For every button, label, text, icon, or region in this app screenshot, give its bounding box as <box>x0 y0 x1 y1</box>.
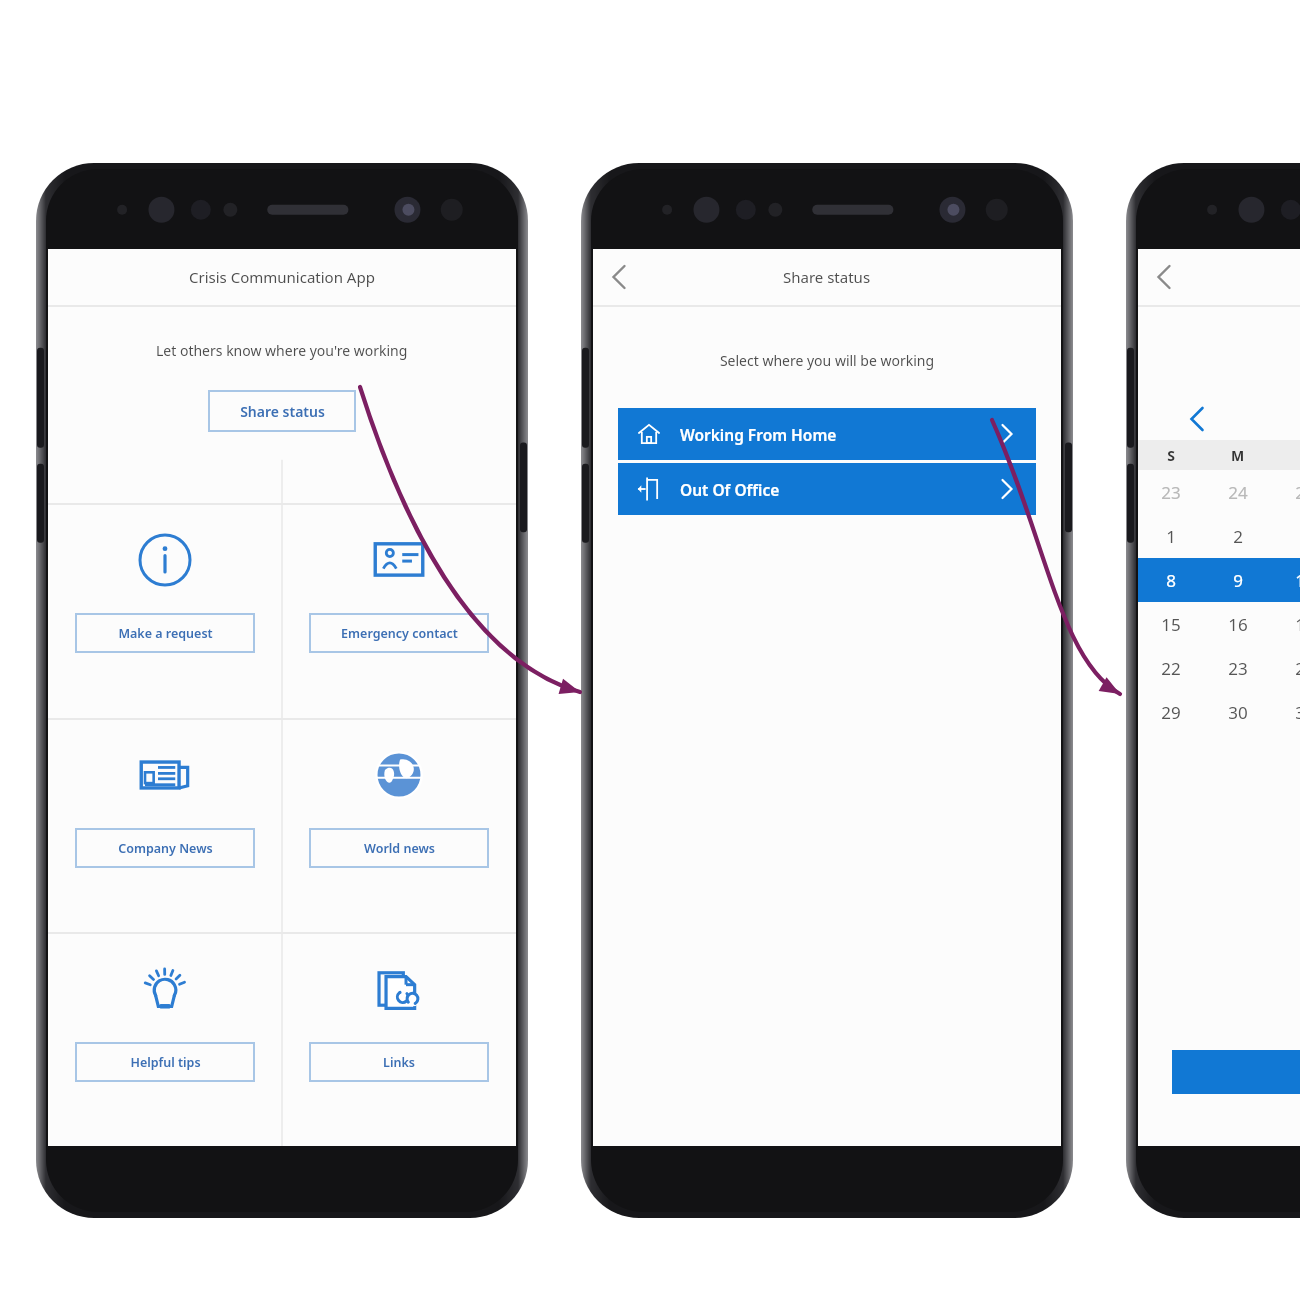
staticText: 10 <box>1295 569 1300 592</box>
button[interactable]: Emergency contact <box>309 613 489 653</box>
button[interactable]: Make a request <box>75 613 255 653</box>
staticText: M <box>1204 446 1271 465</box>
staticText: Working From Home <box>680 424 837 445</box>
staticText: 24 <box>1295 657 1300 680</box>
button[interactable]: Make a request <box>48 505 282 718</box>
button[interactable]: Share status <box>208 390 356 432</box>
button[interactable]: 31 <box>1271 690 1300 734</box>
staticText: 23 <box>1228 657 1248 680</box>
button[interactable]: World news <box>309 828 489 868</box>
staticText: Helpful tips <box>130 1054 201 1071</box>
staticText: Links <box>383 1054 415 1071</box>
button[interactable]: Out Of Office <box>618 463 1036 515</box>
button[interactable]: 8 <box>1138 558 1204 602</box>
staticText: 30 <box>1228 701 1248 724</box>
button[interactable]: 16 <box>1204 602 1271 646</box>
button[interactable]: Company News <box>48 720 282 932</box>
button[interactable]: 30 <box>1204 690 1271 734</box>
button[interactable]: 2 <box>1204 514 1271 558</box>
button[interactable]: 9 <box>1204 558 1271 602</box>
button[interactable]: Back <box>593 251 645 303</box>
staticText: 8 <box>1166 569 1176 592</box>
button[interactable]: 29 <box>1138 690 1204 734</box>
staticText: Select where you will be working <box>593 351 1061 370</box>
button[interactable]: World news <box>282 720 516 932</box>
button[interactable]: 22 <box>1138 646 1204 690</box>
staticText: Company News <box>118 840 213 857</box>
button[interactable]: 23 <box>1138 470 1204 514</box>
staticText: 22 <box>1161 657 1181 680</box>
staticText: 16 <box>1228 613 1248 636</box>
staticText: Let others know where you're working <box>156 341 408 360</box>
button[interactable]: 24 <box>1204 470 1271 514</box>
staticText: Out Of Office <box>680 479 780 500</box>
button[interactable]: Links <box>309 1042 489 1082</box>
button[interactable]: 17 <box>1271 602 1300 646</box>
staticText: 29 <box>1161 701 1181 724</box>
staticText: Make a request <box>118 625 213 642</box>
staticText: Share status <box>240 402 325 421</box>
staticText: 2 <box>1233 525 1243 548</box>
staticText: 15 <box>1161 613 1181 636</box>
button[interactable]: Links <box>282 934 516 1146</box>
staticText: 17 <box>1295 613 1300 636</box>
staticText: 25 <box>1295 481 1300 504</box>
button[interactable]: Back <box>1138 251 1190 303</box>
button[interactable]: Emergency contact <box>282 505 516 718</box>
staticText: 23 <box>1161 481 1181 504</box>
button[interactable]: 24 <box>1271 646 1300 690</box>
button[interactable]: Company News <box>75 828 255 868</box>
button[interactable]: 25 <box>1271 470 1300 514</box>
staticText: 24 <box>1228 481 1248 504</box>
button[interactable]: 1 <box>1138 514 1204 558</box>
button[interactable]: 23 <box>1204 646 1271 690</box>
button[interactable]: 15 <box>1138 602 1204 646</box>
button[interactable]: Working From Home <box>618 408 1036 460</box>
staticText: Emergency contact <box>341 625 458 642</box>
staticText: 1 <box>1166 525 1176 548</box>
button[interactable]: 10 <box>1271 558 1300 602</box>
staticText: Share status <box>783 267 871 287</box>
staticText: World news <box>364 840 435 857</box>
button[interactable]: Helpful tips <box>48 934 282 1146</box>
staticText: S <box>1138 446 1204 465</box>
staticText: Crisis Communication App <box>189 267 375 287</box>
button[interactable]: Previous month <box>1182 404 1212 434</box>
staticText: 9 <box>1233 569 1243 592</box>
button[interactable]: Helpful tips <box>75 1042 255 1082</box>
staticText: 31 <box>1295 701 1300 724</box>
